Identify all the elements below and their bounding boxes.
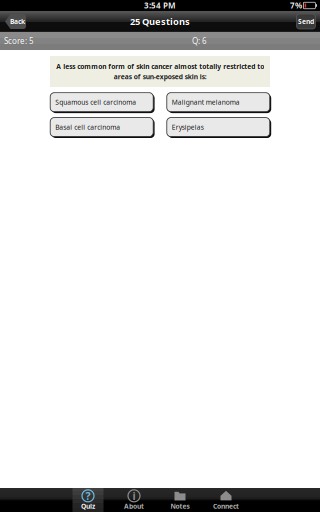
staticText: A less common form of skin cancer almost… [56,62,264,81]
staticText: Basal cell carcinoma [55,123,120,132]
staticText: Score: 5 [4,36,34,46]
staticText: About [124,502,144,511]
staticText: Erysipelas [172,123,204,132]
staticText: i [132,489,135,503]
button[interactable]: Squamous cell carcinoma [49,92,154,112]
staticText: 25 Questions [130,15,190,28]
staticText: 7% [290,0,302,11]
button[interactable]: i [111,488,157,512]
staticText: Connect [213,502,239,511]
staticText: 3:54 PM [144,0,176,11]
staticText: ? [85,489,90,503]
button[interactable]: Send [296,14,315,29]
staticText: Quiz [81,502,95,511]
button[interactable]: Connect [203,488,249,512]
staticText: Squamous cell carcinoma [55,98,136,107]
button[interactable]: Back [5,14,26,29]
staticText: Notes [170,502,189,511]
button[interactable]: Erysipelas [166,117,270,137]
button[interactable]: ? [65,488,111,512]
button[interactable]: Malignant melanoma [166,92,270,112]
staticText: Send [298,17,314,26]
staticText: Back [10,17,25,26]
button[interactable]: Notes [157,488,203,512]
staticText: Malignant melanoma [172,98,240,107]
staticText: Q: 6 [192,36,207,46]
button[interactable]: Basal cell carcinoma [49,117,154,137]
